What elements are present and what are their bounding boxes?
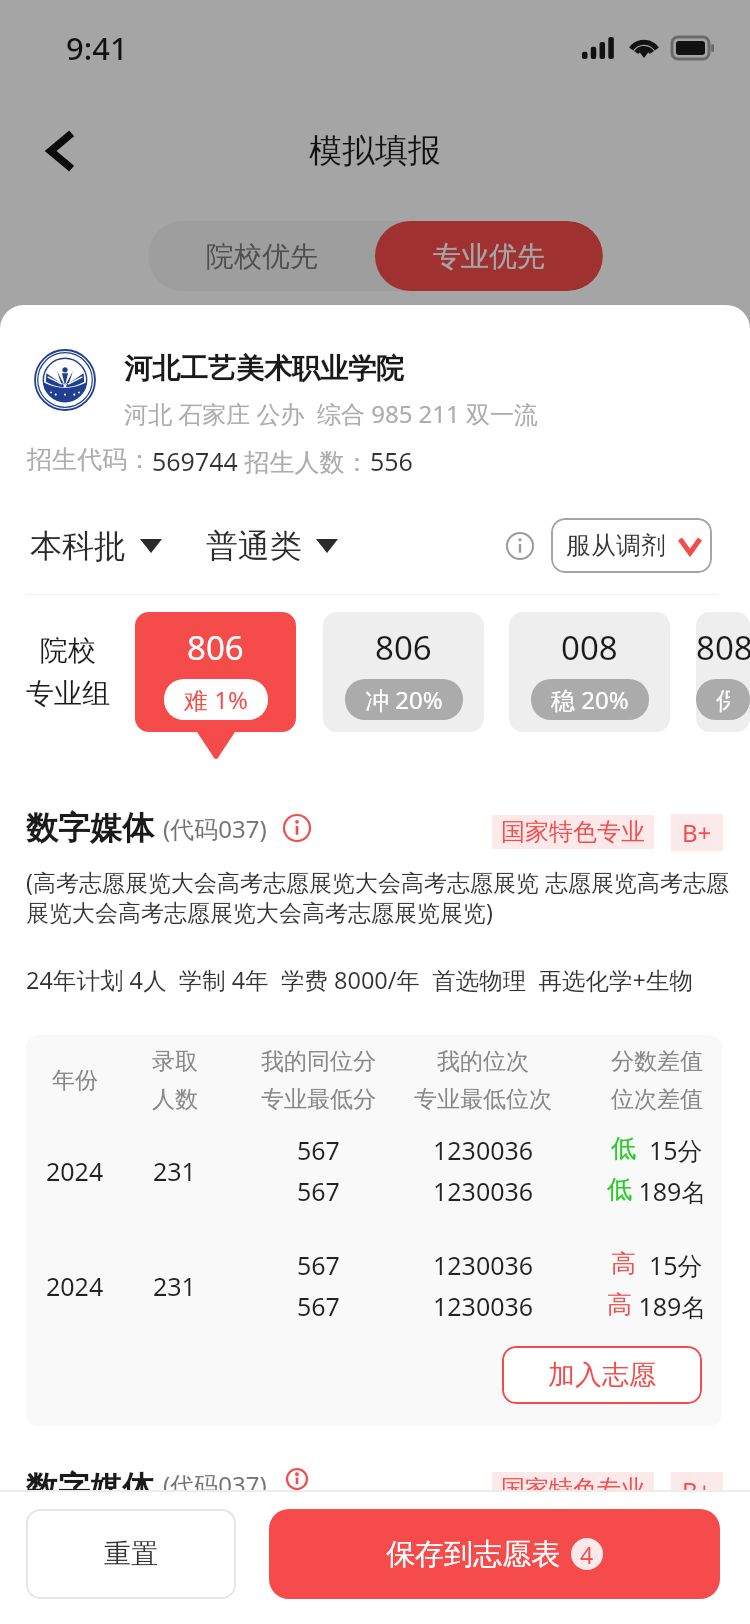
- button[interactable]: 008: [509, 612, 670, 732]
- button[interactable]: 806: [135, 612, 296, 732]
- staticText: 567: [297, 1133, 340, 1167]
- staticText: 位次差值: [611, 1085, 703, 1114]
- staticText: 模拟填报: [309, 130, 441, 172]
- staticText: 569744: [152, 444, 238, 478]
- staticText: 国家特色专业: [501, 1474, 645, 1490]
- staticText: 本科批: [30, 526, 126, 566]
- button[interactable]: Back: [28, 117, 96, 185]
- staticText: 数字媒体: [26, 1468, 154, 1490]
- button[interactable]: 808: [696, 612, 750, 732]
- staticText: 院校优先: [206, 239, 318, 274]
- staticText: B+: [682, 816, 712, 849]
- staticText: (代码037): [163, 812, 267, 845]
- staticText: 专业最低分: [261, 1085, 376, 1114]
- staticText: 567: [297, 1174, 340, 1208]
- staticText: 15分: [636, 1133, 703, 1167]
- button[interactable]: Major info: [283, 814, 311, 842]
- staticText: 低: [611, 1133, 636, 1164]
- button[interactable]: 本科批: [30, 526, 162, 566]
- button[interactable]: Info: [506, 532, 534, 560]
- button[interactable]: 服从调剂: [551, 518, 712, 573]
- staticText: 1230036: [433, 1289, 534, 1323]
- staticText: 2024: [46, 1154, 104, 1188]
- staticText: 招生代码：: [27, 444, 152, 475]
- button[interactable]: Major info: [283, 1468, 311, 1490]
- staticText: 806: [375, 625, 432, 670]
- staticText: 567: [297, 1248, 340, 1282]
- staticText: 人数: [152, 1085, 198, 1114]
- staticText: 分数差值: [611, 1047, 703, 1076]
- staticText: 国家特色专业: [501, 817, 645, 847]
- staticText: 冲 20%: [365, 683, 443, 716]
- button[interactable]: 专业优先: [375, 221, 603, 291]
- staticText: 2024: [46, 1269, 104, 1303]
- staticText: 189名: [632, 1289, 707, 1323]
- staticText: 专业最低位次: [414, 1085, 552, 1114]
- staticText: 难 1%: [184, 683, 248, 716]
- staticText: 河北 石家庄 公办 综合 985 211 双一流: [124, 397, 539, 430]
- staticText: 9:41: [66, 27, 128, 69]
- staticText: 4: [580, 1539, 594, 1570]
- staticText: 556: [370, 444, 413, 478]
- staticText: 保存到志愿表: [386, 1536, 560, 1573]
- button[interactable]: 保存到志愿表: [269, 1509, 720, 1599]
- staticText: 567: [297, 1289, 340, 1323]
- staticText: 1230036: [433, 1133, 534, 1167]
- staticText: 高: [607, 1289, 632, 1320]
- staticText: 稳 20%: [551, 683, 629, 716]
- staticText: 1230036: [433, 1248, 534, 1282]
- staticText: 1230036: [433, 1174, 534, 1208]
- staticText: 院校: [40, 633, 96, 668]
- button[interactable]: 806: [323, 612, 484, 732]
- staticText: 数字媒体: [26, 808, 154, 848]
- staticText: 服从调剂: [566, 530, 666, 561]
- staticText: 加入志愿: [548, 1358, 656, 1392]
- staticText: 我的位次: [437, 1047, 529, 1076]
- staticText: (代码037): [163, 1468, 267, 1490]
- staticText: 低: [607, 1174, 632, 1205]
- staticText: 231: [153, 1269, 196, 1303]
- staticText: 231: [153, 1154, 196, 1188]
- button[interactable]: 普通类: [206, 526, 338, 566]
- staticText: 高: [611, 1248, 636, 1279]
- staticText: 重置: [104, 1537, 158, 1571]
- staticText: (高考志愿展览大会高考志愿展览大会高考志愿展览 志愿展览高考志愿展览大会高考志愿…: [26, 866, 750, 928]
- staticText: 24年计划 4人 学制 4年 学费 8000/年 首选物理 再选化学+生物: [26, 964, 750, 996]
- staticText: 河北工艺美术职业学院: [124, 351, 404, 386]
- button[interactable]: 加入志愿: [502, 1346, 702, 1404]
- staticText: 806: [187, 625, 244, 670]
- staticText: 保 20%: [716, 683, 730, 716]
- staticText: 专业优先: [433, 239, 545, 274]
- staticText: 专业组: [26, 676, 110, 711]
- staticText: 年份: [52, 1066, 98, 1095]
- staticText: B+: [682, 1474, 712, 1490]
- staticText: 15分: [636, 1248, 703, 1282]
- staticText: 普通类: [206, 526, 302, 566]
- staticText: 我的同位分: [261, 1047, 376, 1076]
- button[interactable]: 院校优先: [148, 221, 375, 291]
- staticText: 招生人数：: [238, 444, 370, 478]
- staticText: 808: [696, 625, 750, 670]
- staticText: 189名: [632, 1174, 707, 1208]
- staticText: 008: [561, 625, 618, 670]
- button[interactable]: 重置: [26, 1509, 236, 1599]
- staticText: 录取: [152, 1047, 198, 1076]
